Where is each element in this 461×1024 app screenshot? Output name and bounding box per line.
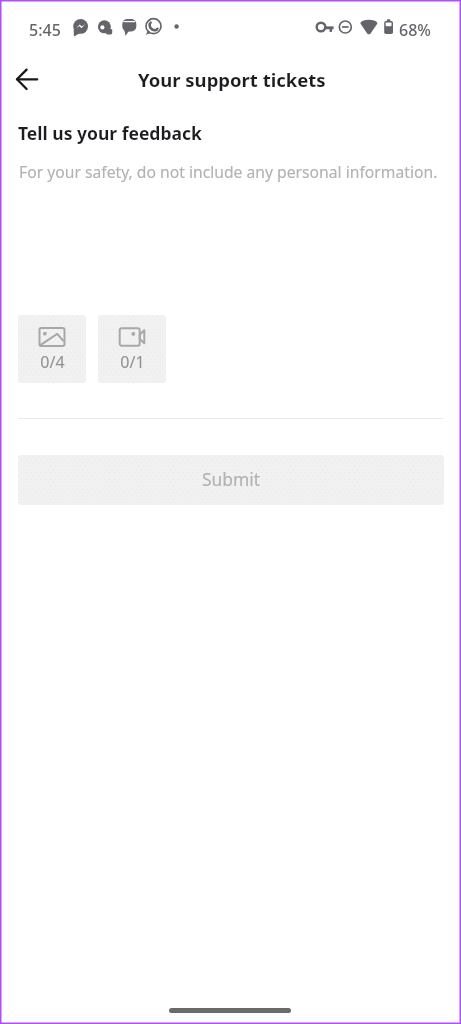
- staticText: Submit: [202, 467, 261, 491]
- staticText: Tell us your feedback: [18, 121, 202, 145]
- staticText: 0/4: [40, 351, 65, 373]
- button[interactable]: 0/4: [18, 315, 86, 383]
- staticText: 5:45: [29, 19, 61, 41]
- staticText: Your support tickets: [138, 67, 326, 92]
- button[interactable]: Back: [3, 55, 51, 103]
- button[interactable]: Submit: [18, 455, 444, 505]
- staticText: 0/1: [120, 351, 145, 373]
- staticText: 68%: [399, 19, 431, 41]
- button[interactable]: 0/1: [98, 315, 166, 383]
- staticText: For your safety, do not include any pers…: [19, 161, 438, 182]
